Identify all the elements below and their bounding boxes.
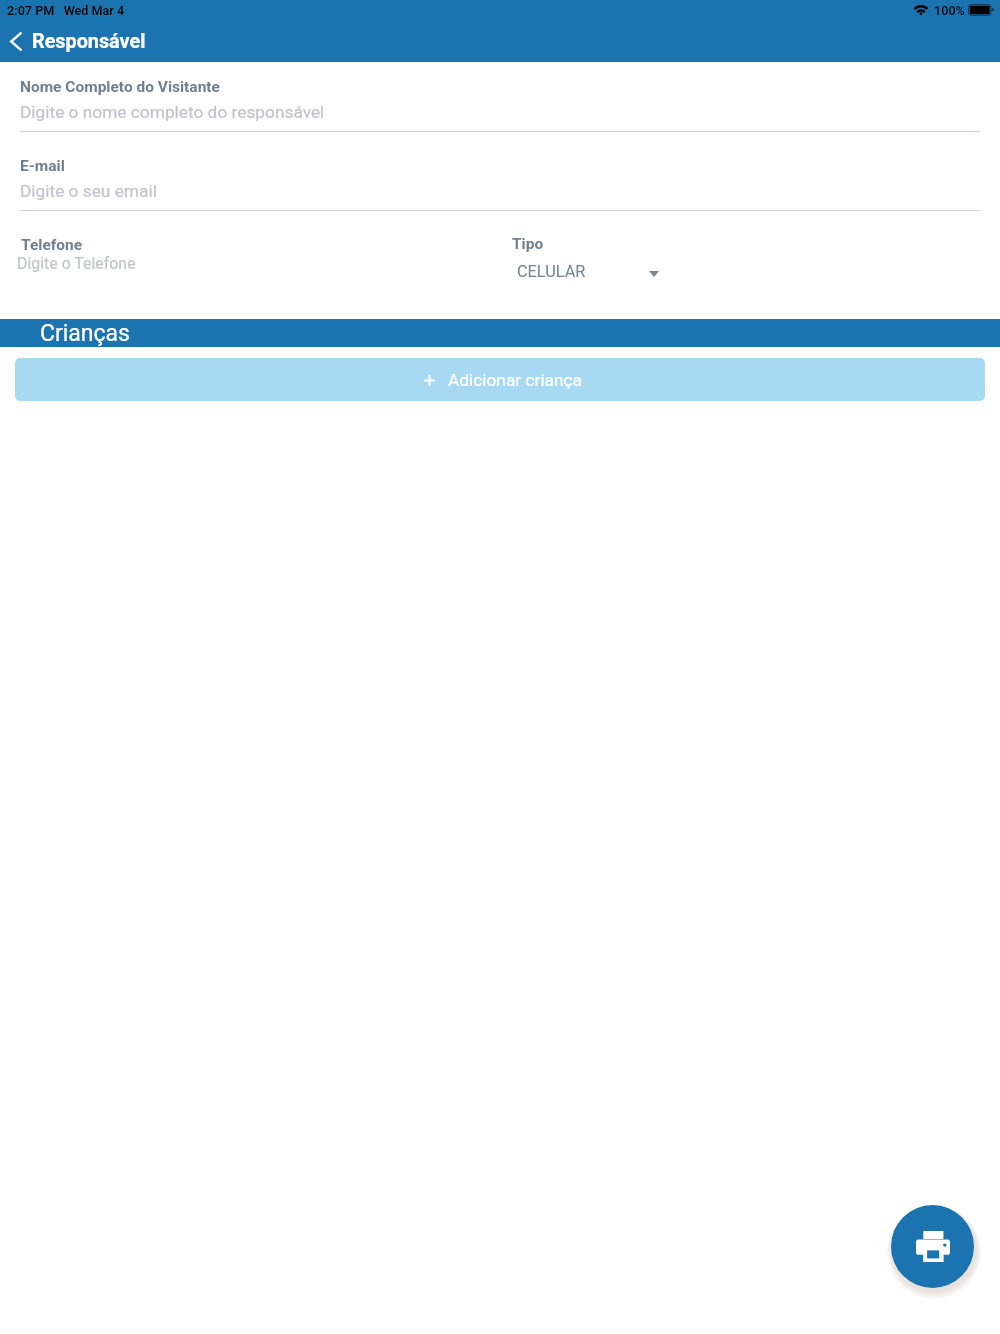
- staticText: Telefone: [21, 236, 83, 254]
- button[interactable]: Telefone: [0, 232, 480, 277]
- button[interactable]: Adicionar criança: [15, 358, 985, 401]
- button[interactable]: Nome Completo do Visitante: [0, 75, 1000, 131]
- staticText: 2:07 PM Wed Mar 4: [7, 3, 125, 18]
- staticText: Digite o nome completo do responsável: [20, 102, 325, 122]
- staticText: Crianças: [40, 320, 130, 347]
- button[interactable]: E-mail: [0, 154, 1000, 210]
- staticText: Nome Completo do Visitante: [20, 78, 220, 96]
- staticText: Digite o seu email: [20, 181, 157, 201]
- staticText: CELULAR: [517, 262, 586, 281]
- button[interactable]: Print: [891, 1205, 974, 1288]
- button[interactable]: Responsável: [0, 21, 156, 61]
- staticText: E-mail: [20, 157, 65, 175]
- staticText: 100%: [934, 3, 965, 18]
- staticText: Digite o Telefone: [17, 254, 136, 273]
- staticText: Responsável: [32, 30, 146, 53]
- staticText: Adicionar criança: [448, 370, 583, 390]
- button[interactable]: Tipo: [500, 232, 680, 284]
- staticText: Tipo: [512, 235, 544, 253]
